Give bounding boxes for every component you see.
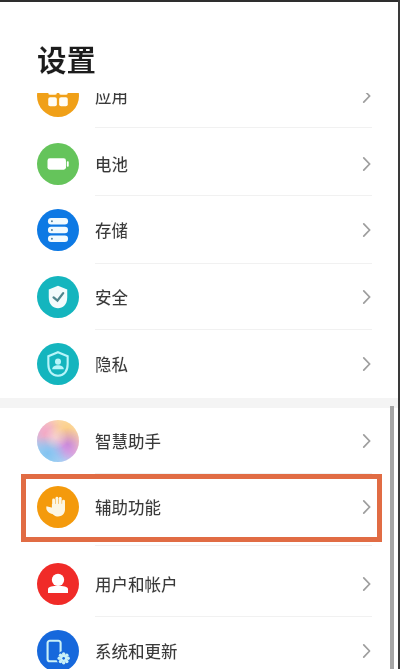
button[interactable]: 辅助功能 (0, 474, 400, 546)
staticText: 隐私 (95, 352, 128, 376)
staticText: 辅助功能 (95, 495, 161, 519)
staticText: 系统和更新 (95, 639, 178, 663)
staticText: 设置 (37, 37, 97, 80)
button[interactable]: 电池 (0, 128, 400, 196)
button[interactable]: 应用 (0, 93, 400, 128)
button[interactable]: 智慧助手 (0, 408, 400, 474)
button[interactable]: 系统和更新 (0, 617, 400, 669)
button[interactable]: 存储 (0, 196, 400, 264)
staticText: 电池 (95, 152, 128, 176)
staticText: 智慧助手 (95, 429, 161, 453)
staticText: 安全 (95, 285, 128, 309)
button[interactable]: 安全 (0, 264, 400, 330)
button[interactable]: 隐私 (0, 330, 400, 398)
staticText: 存储 (95, 218, 128, 242)
staticText: 应用 (95, 93, 128, 108)
button[interactable]: 用户和帐户 (0, 546, 400, 617)
staticText: 用户和帐户 (95, 572, 178, 596)
